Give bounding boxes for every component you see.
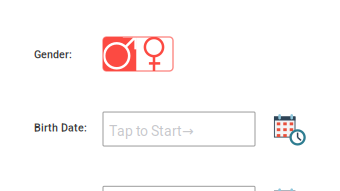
button[interactable]: Pick date [270, 110, 306, 146]
staticText: Birth Date: [34, 122, 87, 134]
button[interactable]: Pick time [270, 184, 306, 191]
staticText: Gender: [34, 48, 72, 61]
staticText: Tap to Start→ [109, 123, 194, 139]
button[interactable] [103, 37, 173, 71]
button[interactable]: Tap to Start→ [103, 112, 255, 146]
button[interactable] [103, 186, 255, 191]
